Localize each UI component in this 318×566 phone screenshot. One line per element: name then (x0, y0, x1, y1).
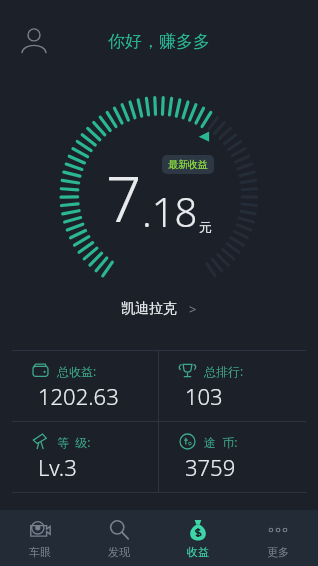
button[interactable]: 发现 (79, 510, 158, 566)
button[interactable]: 途 币: (159, 422, 306, 492)
button[interactable]: 更多 (238, 510, 318, 566)
staticText: 收益 (187, 545, 209, 559)
staticText: 3759 (185, 452, 236, 482)
staticText: > (189, 300, 197, 318)
button[interactable]: 车眼 (0, 510, 79, 566)
staticText: 元 (199, 219, 212, 235)
button[interactable]: 总收益: (12, 351, 158, 421)
staticText: 总收益: (57, 363, 97, 379)
staticText: 总排行: (204, 363, 244, 379)
staticText: 更多 (267, 545, 289, 559)
button[interactable]: 总排行: (159, 351, 306, 421)
button[interactable]: 凯迪拉克 (0, 292, 318, 326)
staticText: 你好，赚多多 (108, 31, 210, 52)
staticText: 途 币: (204, 434, 238, 450)
staticText: 发现 (108, 545, 130, 559)
button[interactable]: Profile (12, 18, 56, 62)
staticText: 凯迪拉克 (121, 300, 177, 318)
button[interactable]: 收益 (158, 510, 238, 566)
button[interactable]: 等 级: (12, 422, 158, 492)
staticText: 1202.63 (38, 381, 119, 411)
staticText: Lv.3 (38, 452, 77, 482)
staticText: 等 级: (57, 434, 91, 450)
staticText: 7 (106, 156, 142, 240)
staticText: 车眼 (29, 545, 51, 559)
staticText: 103 (185, 381, 223, 411)
staticText: 最新收益 (168, 158, 208, 171)
staticText: .18 (142, 184, 198, 238)
